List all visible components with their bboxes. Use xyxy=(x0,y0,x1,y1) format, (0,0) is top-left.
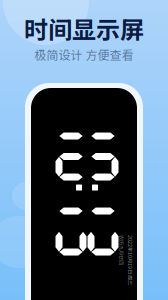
staticText: 2022年10月19日 周三 xyxy=(101,252,151,259)
staticText: 时间显示屏 xyxy=(24,11,144,46)
staticText: 农历九月廿四 xyxy=(101,260,131,268)
staticText: 极简设计 方便查看 xyxy=(34,46,133,63)
